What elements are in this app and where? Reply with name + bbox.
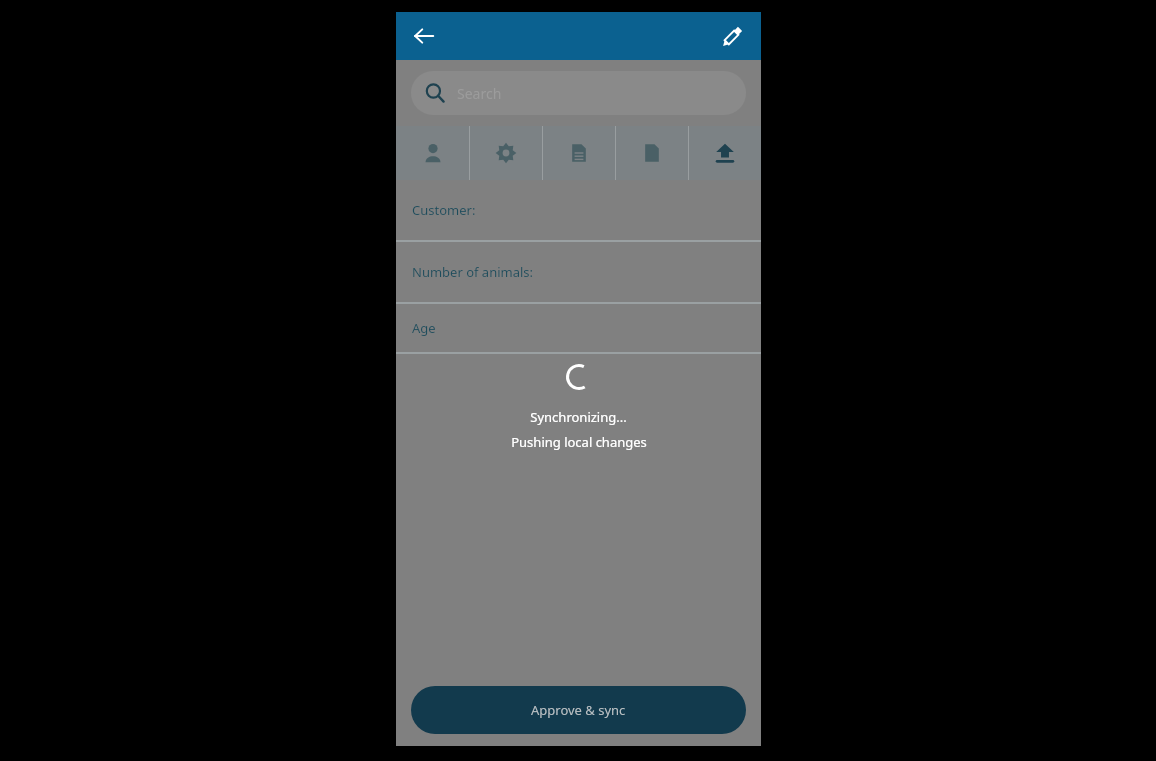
button[interactable]: Document [615, 126, 688, 180]
button[interactable]: Age [396, 304, 761, 352]
staticText: Synchronizing... [530, 408, 627, 426]
button[interactable]: Settings [469, 126, 542, 180]
button[interactable]: Back [404, 16, 444, 56]
staticText: Pushing local changes [511, 433, 647, 451]
button[interactable]: Approve & sync [411, 686, 746, 734]
button[interactable]: Upload [688, 126, 761, 180]
staticText: Search [457, 84, 502, 103]
button[interactable]: Search [411, 71, 746, 115]
staticText: Approve & sync [531, 701, 626, 719]
staticText: Customer: [412, 201, 476, 219]
button[interactable]: Number of animals: [396, 242, 761, 302]
button[interactable]: Report [542, 126, 615, 180]
button[interactable]: Customer [396, 126, 469, 180]
staticText: Age [412, 319, 436, 337]
button[interactable]: Edit [711, 14, 755, 58]
staticText: Number of animals: [412, 263, 534, 281]
button[interactable]: Customer: [396, 180, 761, 240]
